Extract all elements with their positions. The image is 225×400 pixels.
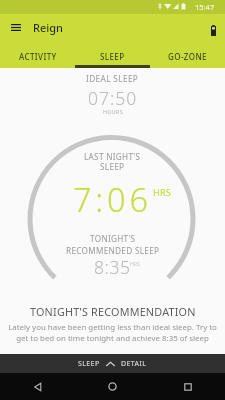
button[interactable]: Recent apps: [150, 373, 225, 400]
button[interactable]: ACTIVITY: [0, 45, 75, 68]
staticText: HRS: [130, 260, 140, 267]
button[interactable]: GO-ZONE: [150, 45, 225, 68]
staticText: SLEEP: [78, 359, 100, 369]
staticText: HRS: [153, 186, 172, 198]
button[interactable]: Battery status: [204, 21, 222, 39]
staticText: 7:06: [73, 177, 152, 221]
staticText: 07:50: [88, 86, 138, 110]
staticText: 8:35: [94, 255, 131, 279]
button[interactable]: SLEEP: [75, 45, 150, 68]
staticText: HOURS: [103, 108, 123, 115]
button[interactable]: Open navigation menu: [3, 15, 28, 40]
staticText: TONIGHT'S RECOMMENDATION: [30, 304, 196, 319]
staticText: Lately you have been getting less than i…: [3, 322, 222, 343]
staticText: LAST NIGHT'S: [84, 151, 141, 162]
staticText: 15:47: [195, 2, 215, 12]
staticText: RECOMMENDED SLEEP: [66, 245, 160, 256]
button[interactable]: SLEEP: [0, 354, 225, 373]
staticText: SLEEP: [100, 51, 125, 62]
button[interactable]: Home: [75, 373, 150, 400]
staticText: IDEAL SLEEP: [86, 73, 139, 84]
staticText: Reign: [33, 20, 63, 35]
staticText: SLEEP: [100, 161, 125, 172]
button[interactable]: Back: [0, 373, 75, 400]
staticText: GO-ZONE: [168, 51, 207, 62]
staticText: ACTIVITY: [19, 51, 57, 62]
staticText: TONIGHT'S: [90, 233, 136, 244]
staticText: DETAIL: [121, 359, 147, 369]
